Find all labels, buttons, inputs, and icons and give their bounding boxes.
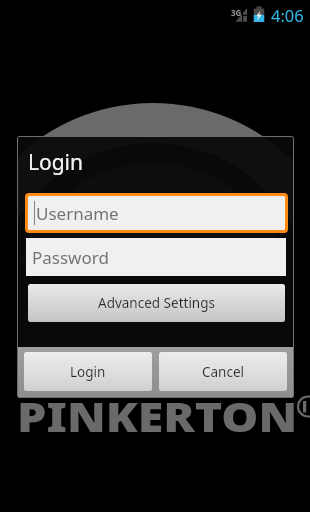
- staticText: 3G: [231, 7, 242, 18]
- staticText: 4:06: [271, 4, 304, 26]
- button[interactable]: Advanced Settings: [28, 284, 285, 322]
- staticText: Login: [70, 363, 106, 381]
- button[interactable]: Cancel: [159, 352, 287, 391]
- staticText: Password: [32, 246, 109, 269]
- staticText: Advanced Settings: [98, 294, 215, 312]
- button[interactable]: Username: [28, 196, 285, 230]
- staticText: Login: [28, 148, 84, 177]
- staticText: PINKERTON: [17, 388, 297, 444]
- staticText: Cancel: [202, 363, 245, 381]
- button[interactable]: Login: [24, 352, 152, 391]
- button[interactable]: Password: [26, 238, 286, 276]
- staticText: Username: [36, 202, 119, 225]
